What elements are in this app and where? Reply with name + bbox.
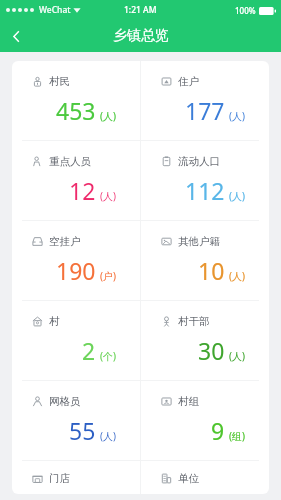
staticText: 住户 <box>178 75 199 88</box>
staticText: 9 <box>211 415 225 446</box>
staticText: 1:21 AM <box>124 4 157 16</box>
staticText: (个) <box>100 349 116 363</box>
staticText: (人) <box>229 349 245 363</box>
staticText: (人) <box>100 189 116 203</box>
staticText: 乡镇总览 <box>113 27 169 45</box>
staticText: (户) <box>100 269 116 283</box>
staticText: (人) <box>229 109 245 123</box>
staticText: 453 <box>56 95 96 126</box>
staticText: (组) <box>229 429 245 443</box>
staticText: 门店 <box>49 472 70 485</box>
staticText: 村 <box>49 315 60 328</box>
staticText: (人) <box>229 269 245 283</box>
button[interactable]: 村干部 <box>141 301 269 380</box>
button[interactable]: 空挂户 <box>12 221 140 300</box>
staticText: 其他户籍 <box>178 235 220 248</box>
button[interactable]: 门店 <box>12 461 140 494</box>
button[interactable]: 重点人员 <box>12 141 140 220</box>
staticText: 空挂户 <box>49 235 81 248</box>
button[interactable]: Back <box>0 20 32 52</box>
staticText: 重点人员 <box>49 155 91 168</box>
button[interactable]: 村 <box>12 301 140 380</box>
staticText: 2 <box>82 335 96 366</box>
button[interactable]: 单位 <box>141 461 269 494</box>
staticText: 190 <box>56 255 96 286</box>
staticText: (人) <box>100 109 116 123</box>
button[interactable]: 流动人口 <box>141 141 269 220</box>
staticText: (人) <box>100 429 116 443</box>
staticText: 177 <box>185 95 225 126</box>
staticText: 12 <box>69 175 96 206</box>
staticText: 村组 <box>178 395 199 408</box>
staticText: 村民 <box>49 75 70 88</box>
button[interactable]: 村组 <box>141 381 269 460</box>
staticText: 网格员 <box>49 395 81 408</box>
button[interactable]: 村民 <box>12 61 140 140</box>
button[interactable]: 住户 <box>141 61 269 140</box>
staticText: 单位 <box>178 472 199 485</box>
staticText: WeChat <box>39 4 71 16</box>
staticText: 100% <box>235 5 256 16</box>
staticText: 55 <box>69 415 96 446</box>
staticText: 流动人口 <box>178 155 220 168</box>
staticText: 10 <box>198 255 225 286</box>
staticText: (人) <box>229 189 245 203</box>
staticText: 30 <box>198 335 225 366</box>
staticText: 村干部 <box>178 315 210 328</box>
button[interactable]: 网格员 <box>12 381 140 460</box>
staticText: 112 <box>185 175 225 206</box>
button[interactable]: 其他户籍 <box>141 221 269 300</box>
